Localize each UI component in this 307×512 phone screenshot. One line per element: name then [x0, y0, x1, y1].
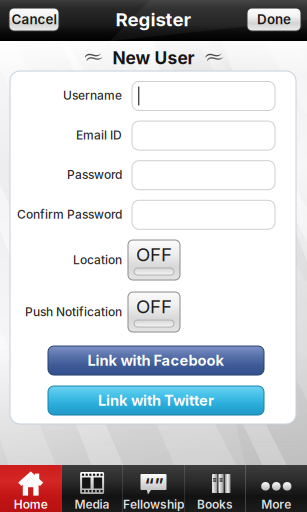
- button[interactable]: Home: [0, 465, 61, 512]
- staticText: Cancel: [11, 11, 56, 27]
- staticText: Password: [67, 167, 122, 182]
- staticText: ”: [154, 474, 163, 495]
- staticText: Books: [197, 497, 233, 511]
- staticText: Link with Twitter: [98, 392, 214, 409]
- staticText: Home: [14, 497, 48, 511]
- staticText: More: [261, 497, 291, 511]
- button[interactable]: Media: [61, 465, 123, 512]
- button[interactable]: Cancel: [9, 8, 59, 31]
- button[interactable]: OFF: [128, 292, 180, 332]
- staticText: Fellowship: [123, 497, 184, 511]
- staticText: OFF: [136, 295, 172, 318]
- staticText: Push Notification: [25, 305, 122, 319]
- button[interactable]: “: [123, 465, 184, 512]
- staticText: Done: [257, 11, 291, 27]
- button[interactable]: Link with Facebook: [48, 346, 264, 375]
- staticText: Location: [73, 253, 122, 267]
- button[interactable]: Done: [247, 8, 301, 31]
- staticText: Email ID: [76, 128, 122, 142]
- staticText: Confirm Password: [17, 207, 122, 221]
- button[interactable]: Link with Twitter: [48, 386, 264, 415]
- button[interactable]: OFF: [128, 240, 180, 280]
- staticText: OFF: [136, 243, 172, 266]
- staticText: Link with Facebook: [87, 352, 224, 369]
- button[interactable]: More: [246, 465, 307, 512]
- staticText: Media: [75, 497, 110, 511]
- staticText: New User: [112, 47, 194, 68]
- staticText: Username: [63, 88, 122, 103]
- staticText: “: [144, 474, 153, 495]
- button[interactable]: Books: [184, 465, 246, 512]
- staticText: Register: [115, 8, 191, 31]
